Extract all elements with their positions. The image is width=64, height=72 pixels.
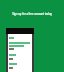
staticText: Sign up for a free account today bbox=[12, 12, 52, 16]
button[interactable]: Sign up for a free account today bbox=[0, 12, 64, 16]
